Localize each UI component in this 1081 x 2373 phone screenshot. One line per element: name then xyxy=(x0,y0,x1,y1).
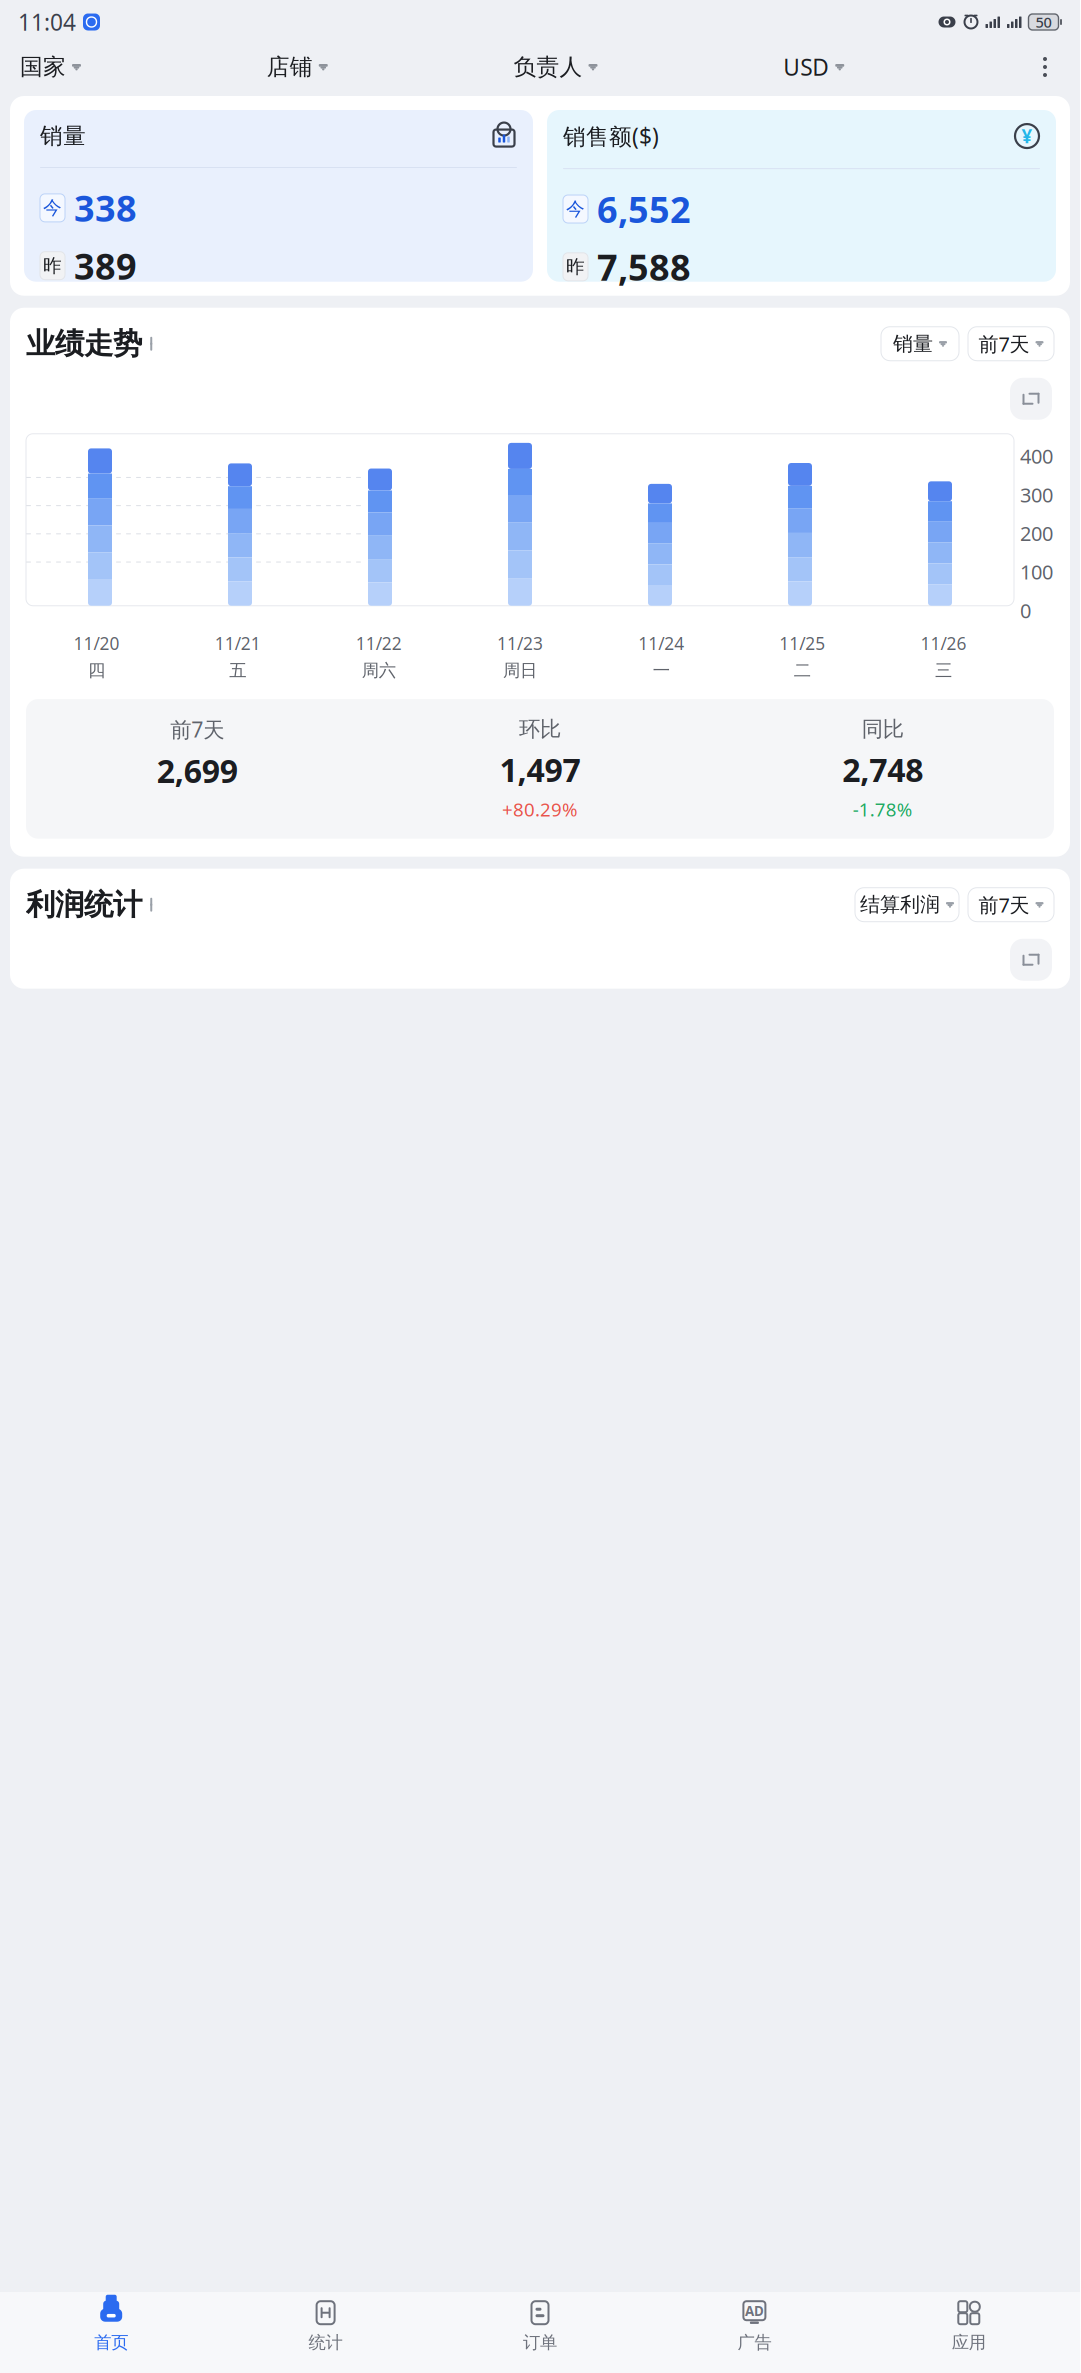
button[interactable]: 结算利润 xyxy=(855,888,959,922)
button[interactable]: 订单 xyxy=(433,2292,647,2357)
button[interactable]: 销量 xyxy=(881,327,959,361)
staticText: 国家 xyxy=(20,53,66,81)
staticText: 前7天 xyxy=(978,891,1029,918)
staticText: 11/20 xyxy=(74,632,120,655)
staticText: 业绩走势 xyxy=(26,326,142,362)
button[interactable]: Expand chart xyxy=(1010,378,1052,420)
staticText: 7,588 xyxy=(597,243,691,291)
staticText: 昨 xyxy=(43,254,62,277)
staticText: 前7天 xyxy=(170,715,224,743)
button[interactable]: 国家 xyxy=(20,47,81,87)
staticText: 100 xyxy=(1020,559,1053,585)
staticText: -1.78% xyxy=(853,797,913,822)
staticText: AD xyxy=(745,2302,764,2320)
staticText: USD xyxy=(783,52,829,82)
staticText: 四 xyxy=(88,660,105,681)
staticText: 300 xyxy=(1020,481,1053,508)
staticText: 销量 xyxy=(893,331,933,356)
staticText: 400 xyxy=(1020,443,1053,469)
staticText: ¥ xyxy=(1021,124,1032,148)
staticText: 6,552 xyxy=(597,185,691,233)
staticText: 结算利润 xyxy=(860,892,940,917)
button[interactable]: 业绩走势 xyxy=(26,326,156,362)
staticText: 389 xyxy=(74,242,137,290)
staticText: 销售额($) xyxy=(563,121,659,151)
staticText: 一 xyxy=(653,660,670,681)
staticText: 广告 xyxy=(737,2332,771,2353)
staticText: 11:04 xyxy=(18,7,76,37)
staticText: 周六 xyxy=(362,660,396,681)
staticText: 二 xyxy=(794,660,811,681)
staticText: 11/22 xyxy=(356,632,402,655)
button[interactable]: More options xyxy=(1030,50,1060,84)
staticText: 负责人 xyxy=(513,53,582,81)
staticText: 首页 xyxy=(94,2332,128,2353)
button[interactable]: 利润统计 xyxy=(26,887,156,923)
staticText: 三 xyxy=(935,660,952,681)
staticText: 11/23 xyxy=(497,632,543,655)
staticText: 50 xyxy=(1035,12,1051,32)
staticText: 338 xyxy=(74,184,137,232)
staticText: 五 xyxy=(229,660,246,681)
staticText: 2,699 xyxy=(157,749,238,792)
staticText: 今 xyxy=(43,196,62,219)
staticText: 0 xyxy=(1020,597,1031,624)
staticText: 前7天 xyxy=(978,330,1029,357)
button[interactable]: 销量 xyxy=(24,110,533,282)
button[interactable]: 应用 xyxy=(862,2292,1076,2357)
button[interactable]: 销售额($) xyxy=(547,110,1056,282)
staticText: 统计 xyxy=(309,2332,343,2353)
button[interactable]: 统计 xyxy=(218,2292,433,2357)
staticText: 利润统计 xyxy=(26,887,142,923)
staticText: 店铺 xyxy=(267,53,313,81)
staticText: 11/26 xyxy=(920,632,966,655)
button[interactable]: 首页 xyxy=(4,2292,218,2357)
staticText: 11/21 xyxy=(215,632,261,655)
staticText: 200 xyxy=(1020,520,1053,547)
button[interactable]: AD xyxy=(647,2292,862,2357)
staticText: 1,497 xyxy=(499,748,580,791)
button[interactable]: 前7天 xyxy=(968,327,1054,361)
button[interactable]: 负责人 xyxy=(513,47,597,87)
staticText: 今 xyxy=(566,197,585,220)
staticText: 同比 xyxy=(862,716,904,742)
staticText: 2,748 xyxy=(842,748,923,791)
staticText: 销量 xyxy=(40,122,86,150)
button[interactable]: 店铺 xyxy=(267,47,328,87)
staticText: 环比 xyxy=(519,716,561,742)
staticText: 11/24 xyxy=(638,632,684,655)
button[interactable]: Expand chart xyxy=(1010,939,1052,981)
staticText: 周日 xyxy=(503,660,537,681)
button[interactable]: 前7天 xyxy=(968,888,1054,922)
staticText: 订单 xyxy=(523,2332,557,2353)
button[interactable]: USD xyxy=(783,46,844,88)
staticText: 11/25 xyxy=(779,632,825,655)
staticText: +80.29% xyxy=(502,797,578,822)
staticText: 应用 xyxy=(952,2332,986,2353)
staticText: 昨 xyxy=(566,255,585,278)
